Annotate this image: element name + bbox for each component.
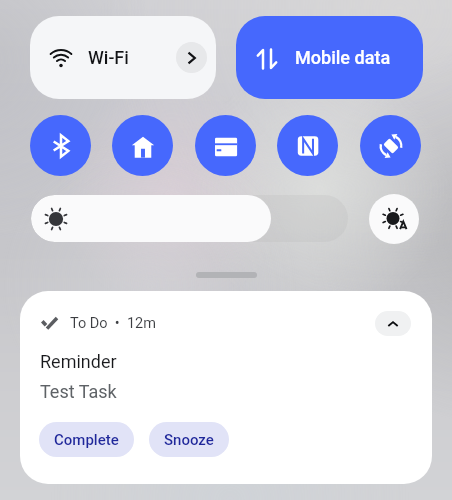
button[interactable]: Complete [39, 422, 134, 457]
button[interactable]: Auto rotate [360, 115, 421, 176]
button[interactable]: Brightness [31, 195, 348, 242]
staticText: Wi-Fi [88, 47, 129, 68]
staticText: Reminder [40, 351, 117, 372]
button[interactable]: Snooze [149, 422, 229, 457]
staticText: Snooze [164, 431, 214, 449]
staticText: To Do • 12m [70, 315, 156, 332]
button[interactable]: Wi-Fi settings [176, 42, 207, 73]
button[interactable]: Auto brightness [369, 194, 419, 244]
staticText: Complete [54, 431, 119, 449]
button[interactable]: Collapse notification [375, 311, 411, 336]
staticText: Mobile data [295, 47, 391, 68]
button[interactable]: Bluetooth [30, 115, 91, 176]
button[interactable]: NFC [277, 115, 338, 176]
staticText: Test Task [40, 381, 117, 402]
button[interactable]: Wallet [195, 115, 256, 176]
button[interactable]: Mobile data [236, 16, 423, 99]
button[interactable]: Home [112, 115, 173, 176]
button[interactable]: Wi-Fi [30, 16, 216, 99]
button[interactable]: To Do • 12m [20, 291, 432, 484]
